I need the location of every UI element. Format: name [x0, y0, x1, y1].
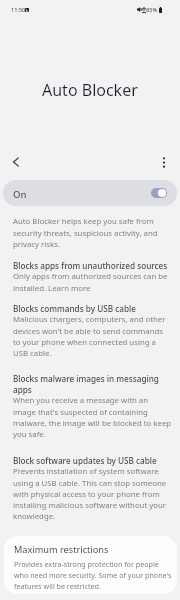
staticText: Block software updates by USB cable	[13, 455, 157, 466]
staticText: Auto Blocker	[42, 79, 138, 101]
button[interactable]: Navigate up	[4, 150, 28, 174]
staticText: 85%	[146, 6, 158, 14]
button[interactable]: Maximum restrictions	[4, 536, 177, 594]
staticText: Only apps from authorized sources can be…	[13, 271, 168, 293]
staticText: Maximum restrictions	[14, 543, 109, 556]
button[interactable]: More options	[152, 150, 176, 174]
staticText: Malicious chargers, computers, and other…	[13, 314, 166, 358]
staticText: Blocks apps from unauthorized sources	[13, 260, 168, 271]
staticText: Auto Blocker helps keep you safe from se…	[13, 216, 158, 249]
staticText: On	[13, 188, 27, 201]
staticText: When you receive a message with an image…	[13, 395, 172, 439]
staticText: Blocks malware images in messaging apps	[13, 373, 159, 395]
button[interactable]: On	[3, 180, 177, 206]
staticText: Blocks commands by USB cable	[13, 303, 136, 314]
staticText: Provides extra-strong protection for peo…	[14, 559, 172, 591]
staticText: Prevents installation of system software…	[13, 466, 167, 521]
staticText: 11:50	[11, 6, 26, 14]
